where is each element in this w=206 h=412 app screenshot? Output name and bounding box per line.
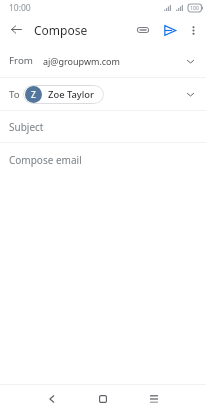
button[interactable]: Expand — [178, 82, 202, 106]
staticText: Z — [31, 89, 36, 101]
button[interactable]: Expand — [178, 49, 202, 73]
staticText: To — [9, 88, 20, 101]
staticText: Compose — [34, 22, 88, 38]
button[interactable]: From — [0, 44, 206, 77]
button[interactable]: Back — [40, 387, 64, 411]
staticText: 10:00 — [9, 2, 31, 14]
staticText: Subject — [9, 120, 44, 134]
staticText: 100 — [190, 5, 199, 12]
staticText: Compose email — [9, 153, 82, 167]
button[interactable]: Home — [91, 387, 115, 411]
button[interactable]: Attach file — [132, 19, 154, 41]
button[interactable]: Back — [1, 15, 31, 44]
button[interactable]: Subject — [0, 111, 206, 142]
button[interactable]: Send — [159, 19, 181, 41]
staticText: Zoe Taylor — [48, 88, 95, 101]
button[interactable]: Recents — [142, 387, 166, 411]
staticText: aj@groupwm.com — [43, 55, 120, 67]
button[interactable]: To — [0, 78, 206, 110]
button[interactable]: More options — [182, 19, 204, 41]
staticText: From — [9, 54, 34, 67]
button[interactable]: Compose email — [0, 143, 206, 177]
button[interactable]: Z — [23, 85, 104, 104]
